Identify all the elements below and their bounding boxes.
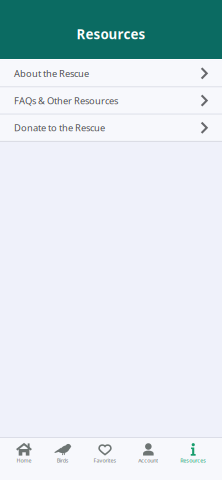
button[interactable]: About the Rescue [0, 60, 222, 86]
staticText: Resources [180, 457, 206, 464]
staticText: Donate to the Rescue [14, 122, 105, 134]
button[interactable]: Account [138, 438, 158, 468]
button[interactable]: Donate to the Rescue [0, 115, 222, 141]
button[interactable]: Home [16, 438, 32, 468]
staticText: Birds [57, 457, 69, 464]
button[interactable]: Favorites [93, 438, 116, 468]
staticText: Account [138, 457, 158, 464]
staticText: Home [16, 457, 31, 464]
staticText: Favorites [93, 457, 116, 464]
staticText: About the Rescue [14, 67, 89, 80]
button[interactable]: Resources [180, 438, 206, 468]
staticText: FAQs & Other Resources [14, 94, 118, 107]
button[interactable]: FAQs & Other Resources [0, 87, 222, 114]
staticText: Resources [76, 25, 145, 43]
button[interactable]: Birds [54, 438, 72, 468]
